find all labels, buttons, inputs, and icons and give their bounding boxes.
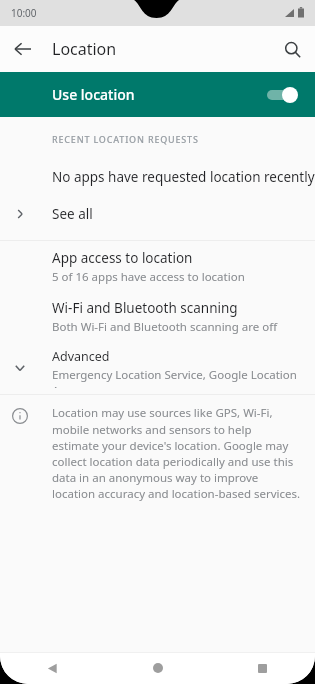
staticText: 10:00 [11, 6, 37, 20]
button[interactable]: Back [8, 34, 38, 64]
staticText: Wi-Fi and Bluetooth scanning [52, 299, 238, 317]
staticText: Advanced [52, 348, 110, 365]
button[interactable]: App access to location [0, 249, 315, 285]
staticText: Use location [52, 85, 135, 104]
button[interactable]: No apps have requested location recently [0, 161, 315, 193]
staticText: App access to location [52, 249, 193, 267]
staticText: Both Wi-Fi and Bluetooth scanning are of… [52, 319, 278, 335]
button[interactable]: Recent apps [210, 652, 315, 684]
button[interactable]: See all [0, 197, 315, 231]
staticText: 5 of 16 apps have access to location [52, 269, 245, 285]
staticText: RECENT LOCATION REQUESTS [52, 133, 199, 145]
staticText: Location [52, 38, 117, 60]
staticText: Location may use sources like GPS, Wi-Fi… [52, 405, 301, 501]
button[interactable]: Wi-Fi and Bluetooth scanning [0, 299, 315, 335]
button[interactable]: Search [277, 34, 307, 64]
staticText: Emergency Location Service, Google Locat… [52, 367, 315, 388]
button[interactable]: Home [105, 652, 210, 684]
button[interactable]: Use location [0, 72, 315, 117]
staticText: See all [52, 205, 93, 223]
button[interactable]: Advanced [0, 348, 315, 388]
button[interactable]: Back [0, 652, 105, 684]
staticText: No apps have requested location recently [52, 168, 315, 186]
